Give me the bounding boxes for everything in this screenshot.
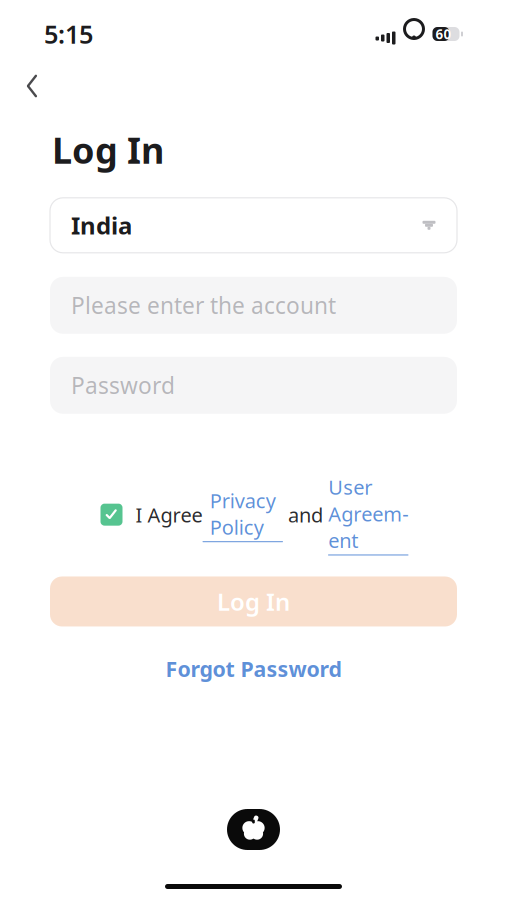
button[interactable]: Back [10,64,54,108]
staticText: User Agreement [328,474,408,553]
staticText: Privacy Policy [210,487,276,540]
button[interactable]: Log In [50,576,457,626]
staticText: 5:15 [44,17,93,51]
button[interactable]: User Agreement [328,474,408,555]
button[interactable]: Password [50,357,457,414]
button[interactable]: I agree to the terms [98,502,124,528]
button[interactable]: Privacy Policy [202,487,283,542]
staticText: Please enter the account [71,290,336,320]
button[interactable]: Forgot Password [151,649,355,688]
staticText: Password [71,370,175,400]
staticText: Forgot Password [165,654,341,683]
staticText: I Agree [135,501,202,528]
staticText: and [283,501,328,528]
staticText: Log In [52,126,164,174]
staticText: 60 [435,25,451,43]
button[interactable]: Please enter the account [50,277,457,334]
button[interactable]: India [50,198,457,253]
staticText: India [71,209,132,241]
staticText: Log In [217,585,290,617]
